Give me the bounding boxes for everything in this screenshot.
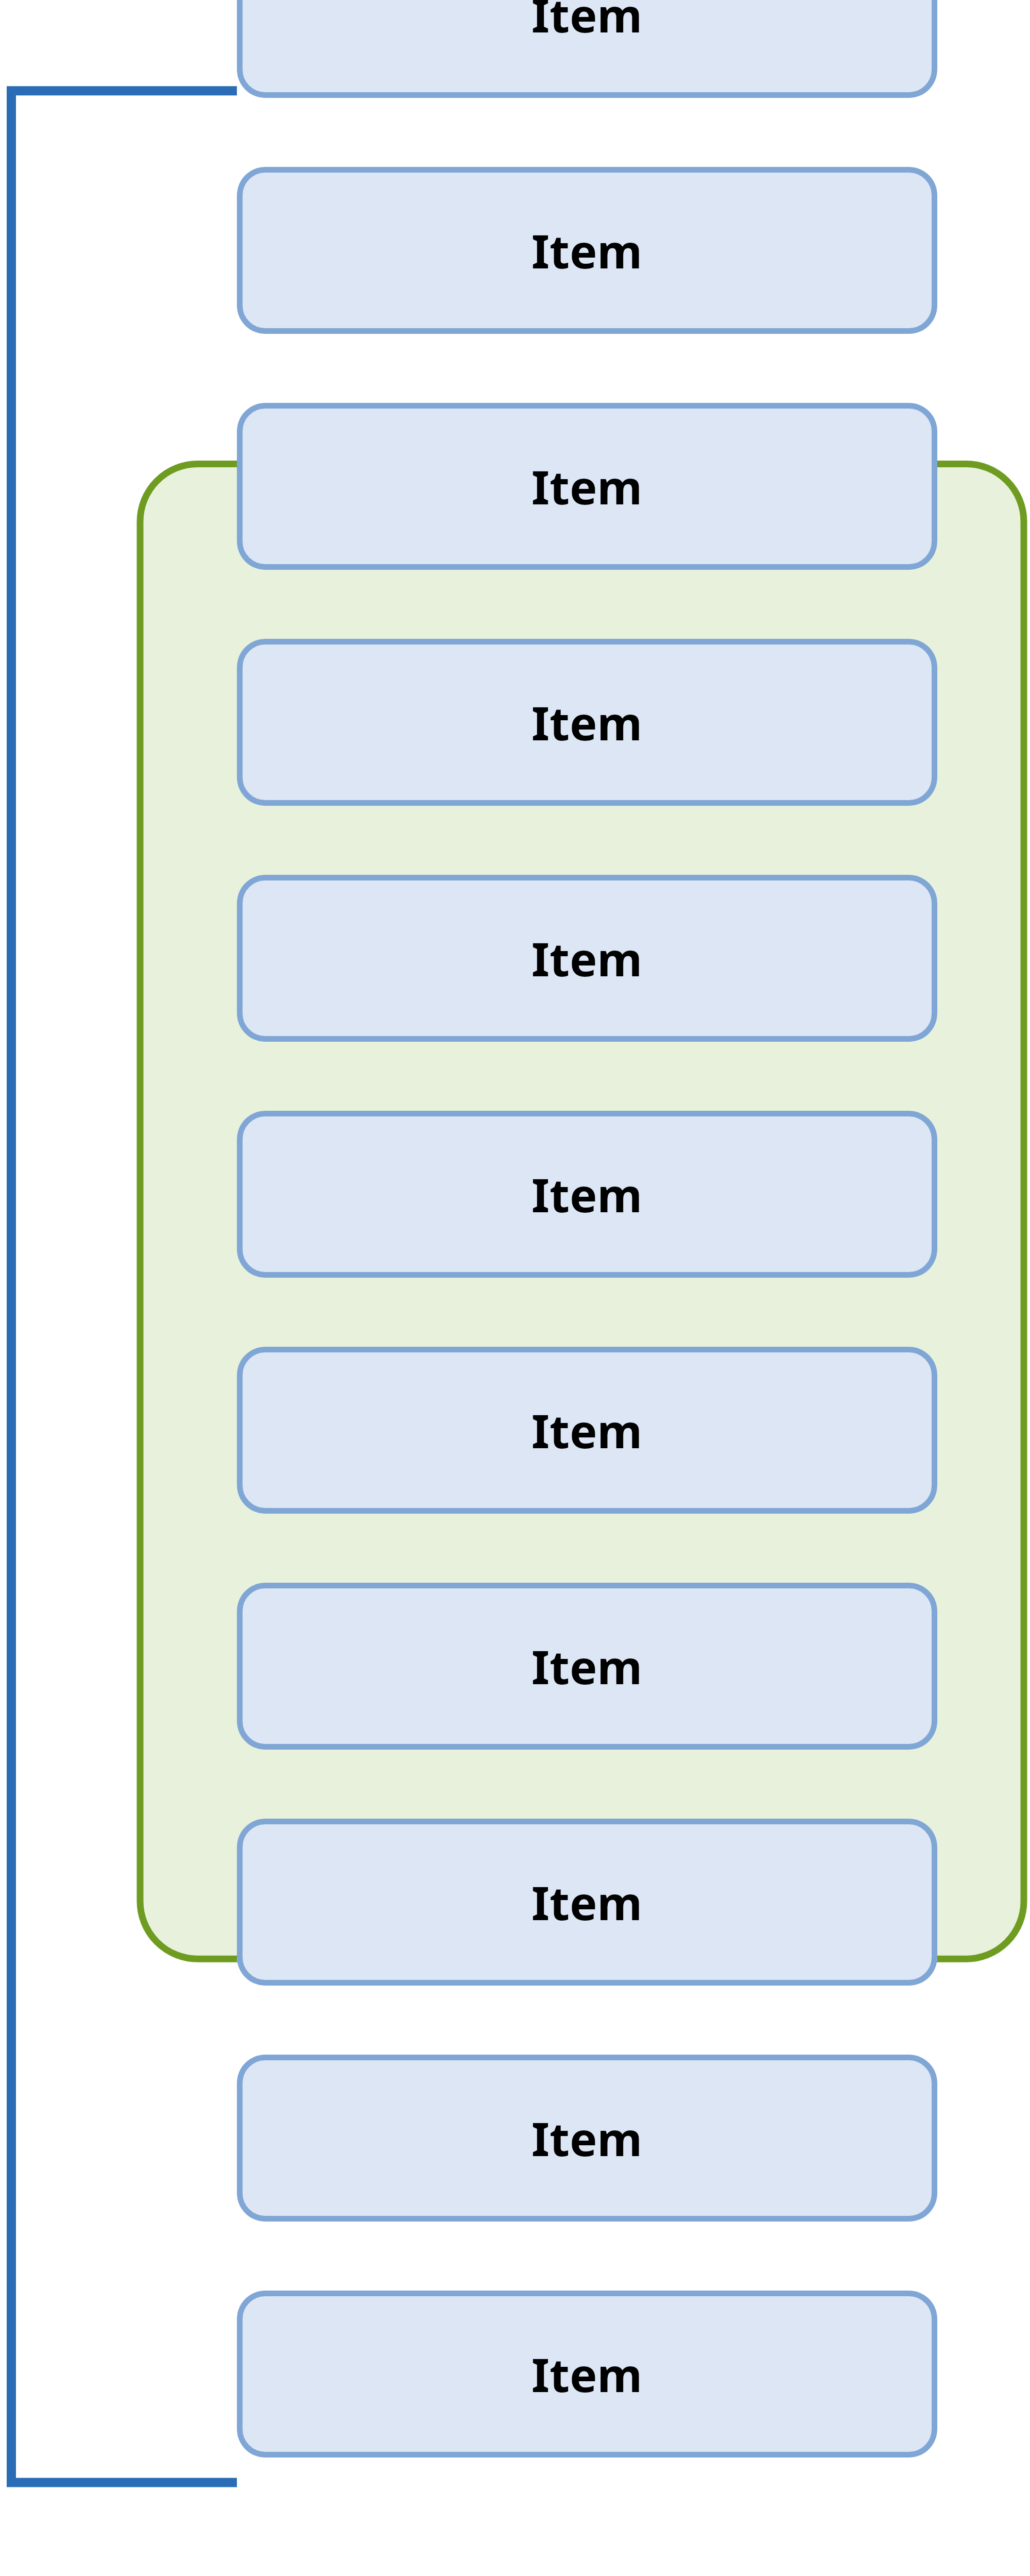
staticText: Item (531, 1399, 643, 1462)
button[interactable]: Item (237, 0, 937, 98)
button[interactable]: Item (237, 1819, 937, 1986)
staticText: Item (531, 2107, 643, 2170)
staticText: Item (531, 1871, 643, 1934)
button[interactable]: Item (237, 2055, 937, 2222)
button[interactable]: Item (237, 167, 937, 334)
staticText: Item (531, 0, 643, 46)
staticText: Item (531, 219, 643, 282)
staticText: Item (531, 2343, 643, 2405)
staticText: Item (531, 691, 643, 754)
button[interactable]: Item (237, 2291, 937, 2458)
staticText: Item (531, 927, 643, 990)
staticText: Item (531, 1163, 643, 1226)
other: Item group (140, 464, 1024, 1959)
button[interactable]: Item (237, 403, 937, 570)
button[interactable]: Item (237, 639, 937, 806)
button[interactable]: Item (237, 1347, 937, 1514)
staticText: Item (531, 455, 643, 518)
button[interactable]: Item (237, 875, 937, 1042)
button[interactable]: Item (237, 1111, 937, 1278)
button[interactable]: Item (237, 1583, 937, 1750)
staticText: Item (531, 1635, 643, 1698)
